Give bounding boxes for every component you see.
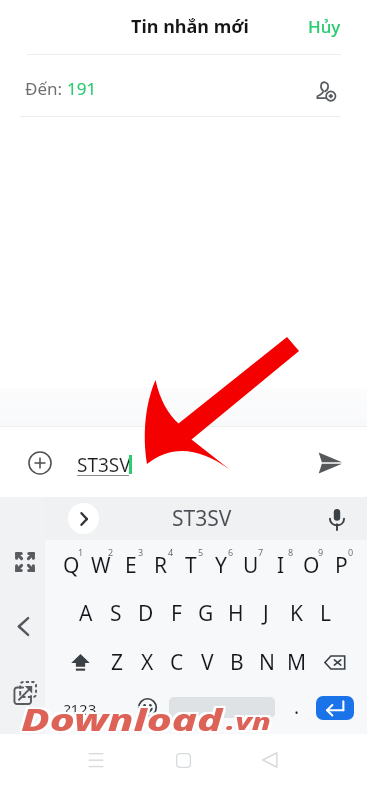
staticText: Hủy: [308, 15, 341, 38]
staticText: T: [185, 551, 197, 580]
staticText: ST3SV: [77, 452, 131, 478]
button[interactable]: More suggestions: [68, 503, 99, 534]
button[interactable]: C: [162, 638, 192, 687]
staticText: Download: [21, 698, 224, 740]
button[interactable]: Expand keyboard: [7, 544, 42, 579]
button[interactable]: F: [161, 589, 191, 638]
staticText: .vn: [228, 705, 273, 736]
staticText: F: [171, 599, 182, 628]
button[interactable]: Screenshot: [7, 675, 42, 710]
staticText: C: [170, 648, 184, 677]
staticText: R: [154, 551, 168, 580]
button[interactable]: Y: [206, 540, 236, 589]
button[interactable]: Back: [252, 742, 288, 778]
button[interactable]: L: [311, 589, 341, 638]
button[interactable]: N: [252, 638, 282, 687]
staticText: ?123: [64, 699, 97, 719]
staticText: 1: [78, 546, 84, 558]
button[interactable]: J: [251, 589, 281, 638]
staticText: .vn: [228, 707, 273, 738]
staticText: 2: [108, 546, 114, 558]
staticText: .vn: [226, 707, 271, 738]
button[interactable]: K: [281, 589, 311, 638]
staticText: ST3SV: [172, 504, 232, 533]
button[interactable]: Send: [316, 449, 344, 477]
button[interactable]: Z: [102, 638, 132, 687]
button[interactable]: Add contact: [310, 69, 342, 101]
button[interactable]: ?123: [57, 684, 103, 733]
staticText: 3: [138, 546, 144, 558]
button[interactable]: Back: [6, 609, 41, 644]
button[interactable]: Emoji: [124, 683, 170, 732]
button[interactable]: Recents: [78, 742, 114, 778]
button[interactable]: O: [296, 540, 326, 589]
button[interactable]: Space: [169, 697, 275, 718]
staticText: N: [259, 648, 275, 677]
staticText: Download: [21, 700, 224, 742]
staticText: Tin nhắn mới: [131, 14, 249, 39]
staticText: Download: [19, 700, 222, 742]
staticText: S: [110, 599, 122, 628]
button[interactable]: A: [71, 589, 101, 638]
staticText: .vn: [226, 705, 271, 736]
staticText: .vn: [224, 707, 269, 738]
button[interactable]: W: [86, 540, 116, 589]
staticText: .vn: [226, 703, 271, 734]
staticText: 8: [288, 546, 294, 558]
staticText: Q: [63, 551, 80, 580]
button[interactable]: I: [266, 540, 296, 589]
button[interactable]: G: [191, 589, 221, 638]
button[interactable]: T: [176, 540, 206, 589]
staticText: A: [79, 599, 93, 628]
staticText: B: [230, 648, 244, 677]
staticText: Download: [19, 698, 222, 740]
staticText: Đến:: [25, 77, 67, 100]
staticText: U: [243, 551, 259, 580]
button[interactable]: Add attachment: [26, 449, 54, 477]
button[interactable]: Backspace: [312, 638, 367, 687]
button[interactable]: B: [222, 638, 252, 687]
staticText: L: [320, 599, 332, 628]
staticText: .: [294, 694, 300, 720]
staticText: P: [335, 551, 348, 580]
button[interactable]: V: [192, 638, 222, 687]
staticText: 4: [168, 546, 174, 558]
staticText: E: [125, 551, 137, 580]
button[interactable]: X: [132, 638, 162, 687]
staticText: 9: [318, 546, 324, 558]
button[interactable]: Voice input: [323, 505, 351, 533]
staticText: I: [277, 551, 285, 580]
staticText: Download: [21, 696, 224, 738]
staticText: .vn: [224, 705, 269, 736]
button[interactable]: S: [101, 589, 131, 638]
staticText: X: [141, 648, 154, 677]
button[interactable]: Shift: [45, 638, 102, 687]
staticText: H: [228, 599, 244, 628]
staticText: Download: [23, 700, 226, 742]
staticText: M: [287, 648, 307, 677]
staticText: J: [263, 599, 269, 628]
button[interactable]: R: [146, 540, 176, 589]
staticText: V: [201, 648, 214, 677]
button[interactable]: Enter: [316, 696, 354, 720]
button[interactable]: M: [282, 638, 312, 687]
staticText: .vn: [224, 703, 269, 734]
button[interactable]: D: [131, 589, 161, 638]
staticText: 191: [67, 77, 97, 100]
staticText: Z: [111, 648, 124, 677]
staticText: D: [138, 599, 154, 628]
button[interactable]: Home: [165, 742, 201, 778]
button[interactable]: P: [326, 540, 356, 589]
button[interactable]: E: [116, 540, 146, 589]
staticText: Download: [23, 698, 226, 740]
button[interactable]: H: [221, 589, 251, 638]
button[interactable]: .: [280, 686, 314, 735]
staticText: 7: [258, 546, 264, 558]
button[interactable]: U: [236, 540, 266, 589]
staticText: 5: [198, 546, 204, 558]
staticText: .vn: [228, 703, 273, 734]
button[interactable]: Hủy: [296, 6, 352, 46]
staticText: O: [303, 551, 320, 580]
button[interactable]: Q: [56, 540, 86, 589]
staticText: K: [290, 599, 303, 628]
